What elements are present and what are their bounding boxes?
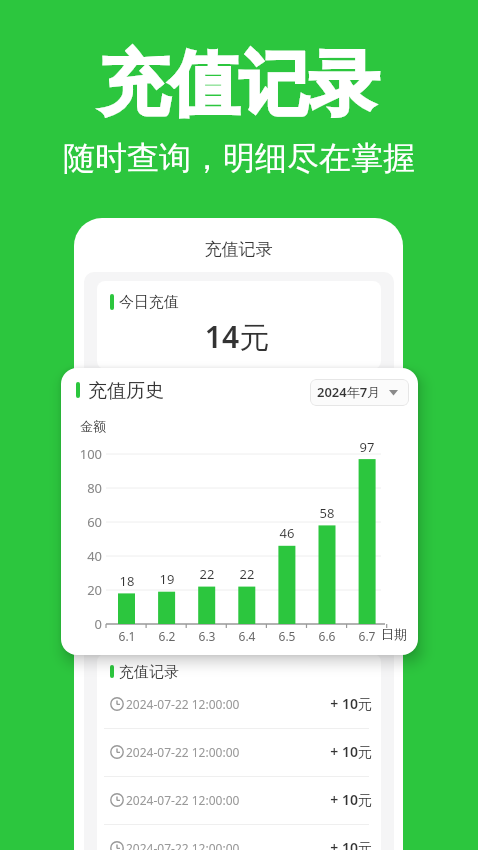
staticText: 6.4 bbox=[227, 628, 267, 644]
staticText: 6.7 bbox=[347, 628, 387, 644]
staticText: 2024-07-22 12:00:00 bbox=[126, 840, 240, 850]
staticText: 6.3 bbox=[187, 628, 227, 644]
staticText: 日期 bbox=[381, 626, 407, 642]
staticText: 20 bbox=[61, 581, 102, 599]
staticText: 随时查询，明细尽在掌握 bbox=[0, 138, 478, 178]
button[interactable]: 2024-07-22 12:00:00 bbox=[104, 680, 376, 728]
staticText: 充值记录 bbox=[74, 239, 403, 260]
staticText: 100 bbox=[61, 445, 102, 463]
staticText: 2024年7月 bbox=[317, 383, 381, 401]
staticText: 19 bbox=[147, 570, 187, 588]
staticText: 22 bbox=[187, 565, 227, 583]
staticText: 充值记录 bbox=[0, 41, 478, 129]
button[interactable]: 2024-07-22 12:00:00 bbox=[104, 824, 376, 850]
staticText: + 10元 bbox=[300, 694, 372, 713]
staticText: + 10元 bbox=[300, 742, 372, 761]
staticText: 2024-07-22 12:00:00 bbox=[126, 744, 240, 760]
staticText: 充值历史 bbox=[88, 379, 164, 403]
staticText: 22 bbox=[227, 565, 267, 583]
staticText: 2024-07-22 12:00:00 bbox=[126, 696, 240, 712]
staticText: 80 bbox=[61, 479, 102, 497]
staticText: 6.5 bbox=[267, 628, 307, 644]
staticText: 金额 bbox=[80, 418, 106, 434]
staticText: 6.1 bbox=[107, 628, 147, 644]
staticText: + 10元 bbox=[300, 838, 372, 850]
staticText: 40 bbox=[61, 547, 102, 565]
staticText: 今日充值 bbox=[119, 293, 179, 312]
staticText: 58 bbox=[307, 504, 347, 522]
button[interactable]: 2024-07-22 12:00:00 bbox=[104, 776, 376, 824]
staticText: 97 bbox=[347, 438, 387, 456]
button[interactable]: 2024-07-22 12:00:00 bbox=[104, 728, 376, 776]
staticText: 2024-07-22 12:00:00 bbox=[126, 792, 240, 808]
staticText: 充值记录 bbox=[119, 663, 179, 682]
staticText: 46 bbox=[267, 524, 307, 542]
staticText: 60 bbox=[61, 513, 102, 531]
staticText: 6.2 bbox=[147, 628, 187, 644]
button[interactable]: 2024年7月 bbox=[310, 379, 409, 406]
staticText: 0 bbox=[61, 615, 102, 633]
staticText: 14元 bbox=[97, 316, 379, 357]
staticText: 6.6 bbox=[307, 628, 347, 644]
staticText: 18 bbox=[107, 572, 147, 590]
staticText: + 10元 bbox=[300, 790, 372, 809]
